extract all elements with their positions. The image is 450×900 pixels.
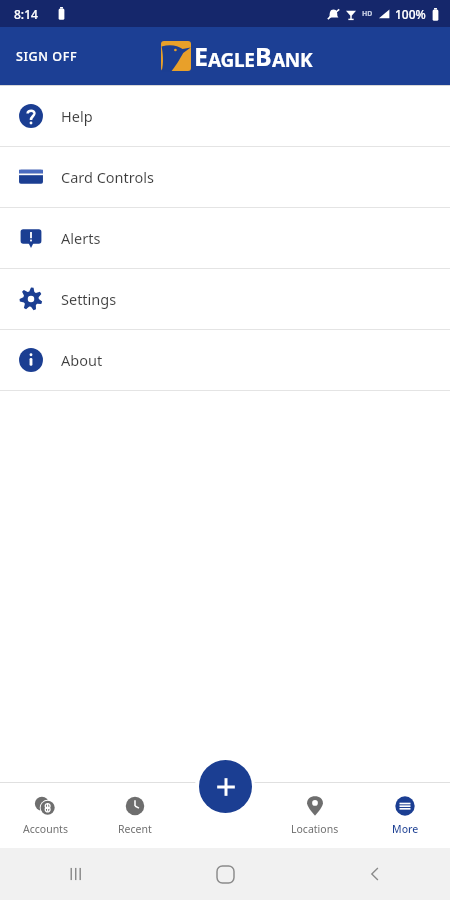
button[interactable]: Add	[199, 760, 252, 813]
staticText: Settings	[61, 289, 117, 309]
staticText: Recent	[118, 822, 152, 836]
button[interactable]: Accounts	[0, 782, 90, 848]
button[interactable]: Help	[0, 86, 450, 146]
staticText: Card Controls	[61, 167, 154, 187]
staticText: HD	[362, 9, 373, 19]
staticText: About	[61, 350, 103, 370]
staticText: More	[392, 822, 419, 836]
staticText: Alerts	[61, 228, 101, 248]
button[interactable]: Back	[355, 854, 395, 894]
button[interactable]: Home	[205, 854, 245, 894]
button[interactable]: Card Controls	[0, 147, 450, 207]
button[interactable]: Alerts	[0, 208, 450, 268]
button[interactable]: About	[0, 330, 450, 390]
staticText: Help	[61, 106, 93, 126]
staticText: Accounts	[23, 822, 68, 836]
button[interactable]: Recents	[55, 854, 95, 894]
staticText: 8:14	[14, 6, 38, 22]
button[interactable]: SIGN OFF	[0, 38, 94, 75]
staticText: Locations	[291, 822, 339, 836]
button[interactable]: More	[360, 782, 450, 848]
staticText: E	[194, 39, 208, 73]
staticText: AGLE	[208, 47, 255, 73]
staticText: 100%	[395, 6, 426, 22]
staticText: B	[255, 39, 272, 73]
button[interactable]: Locations	[270, 782, 360, 848]
button[interactable]: Settings	[0, 269, 450, 329]
staticText: ANK	[272, 47, 313, 73]
button[interactable]: Recent	[90, 782, 180, 848]
staticText: SIGN OFF	[16, 48, 78, 65]
